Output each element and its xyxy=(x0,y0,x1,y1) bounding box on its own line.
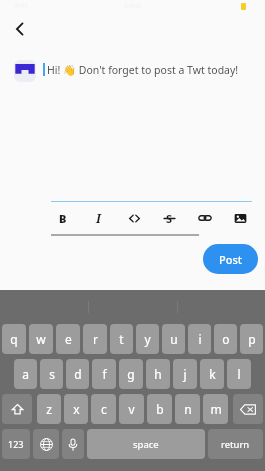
button[interactable]: i xyxy=(188,324,211,354)
staticText: u xyxy=(170,331,178,347)
button[interactable]: k xyxy=(200,359,224,389)
button[interactable]: y xyxy=(136,324,159,354)
staticText: f xyxy=(102,366,107,382)
button[interactable]: o xyxy=(214,324,237,354)
staticText: j xyxy=(183,366,187,382)
button[interactable]: Voice input xyxy=(62,429,84,459)
button[interactable]: t xyxy=(110,324,133,354)
staticText: v xyxy=(128,401,135,417)
button[interactable]: e xyxy=(56,324,80,354)
staticText: x xyxy=(73,401,80,417)
staticText: S xyxy=(166,211,173,226)
staticText: g xyxy=(127,366,135,382)
staticText: i xyxy=(198,331,202,347)
button[interactable]: p xyxy=(240,324,263,354)
button[interactable]: v xyxy=(119,394,144,424)
staticText: B xyxy=(59,211,67,226)
staticText: q xyxy=(10,331,18,347)
staticText: t xyxy=(119,331,124,347)
button[interactable]: n xyxy=(175,394,200,424)
button[interactable]: Backspace xyxy=(233,394,263,424)
staticText: c xyxy=(101,401,107,417)
staticText: return xyxy=(221,438,250,451)
staticText: I xyxy=(96,210,101,226)
button[interactable]: Avatar xyxy=(14,60,36,82)
button[interactable]: Back xyxy=(6,15,34,43)
button[interactable]: Image xyxy=(228,206,252,230)
staticText: l xyxy=(237,366,241,382)
button[interactable]: f xyxy=(92,359,116,389)
button[interactable]: d xyxy=(66,359,89,389)
staticText: a xyxy=(22,366,29,382)
button[interactable]: s xyxy=(40,359,63,389)
staticText: r xyxy=(93,331,98,347)
staticText: 123 xyxy=(8,438,24,450)
button[interactable]: u xyxy=(162,324,185,354)
staticText: e xyxy=(65,331,72,347)
button[interactable]: Emoji xyxy=(33,429,59,459)
button[interactable]: h xyxy=(146,359,170,389)
button[interactable]: space xyxy=(87,429,205,459)
button[interactable]: r xyxy=(83,324,107,354)
button[interactable]: Bold xyxy=(51,206,75,230)
staticText: w xyxy=(36,331,46,347)
staticText: p xyxy=(248,331,256,347)
button[interactable]: b xyxy=(147,394,172,424)
staticText: s xyxy=(49,366,55,382)
staticText: Post xyxy=(219,252,242,267)
staticText: b xyxy=(156,401,164,417)
staticText: h xyxy=(154,366,162,382)
staticText: m xyxy=(210,401,222,417)
button[interactable]: Shift xyxy=(2,394,32,424)
button[interactable]: Code xyxy=(122,206,146,230)
staticText: space xyxy=(133,438,159,451)
button[interactable]: a xyxy=(14,359,37,389)
button[interactable]: Strikethrough xyxy=(157,206,181,230)
staticText: d xyxy=(74,366,82,382)
staticText: Hi! 👋 Don't forget to post a Twt today! xyxy=(47,63,239,77)
button[interactable]: Link xyxy=(193,206,217,230)
button[interactable]: x xyxy=(64,394,88,424)
button[interactable]: Post xyxy=(203,244,258,274)
button[interactable]: w xyxy=(29,324,53,354)
button[interactable]: Italic xyxy=(86,206,110,230)
button[interactable]: l xyxy=(227,359,251,389)
button[interactable]: z xyxy=(37,394,61,424)
button[interactable]: m xyxy=(203,394,228,424)
button[interactable]: return xyxy=(208,429,263,459)
button[interactable]: c xyxy=(91,394,116,424)
button[interactable]: g xyxy=(119,359,143,389)
staticText: z xyxy=(46,401,52,417)
staticText: k xyxy=(209,366,216,382)
staticText: y xyxy=(144,331,151,347)
button[interactable]: q xyxy=(2,324,26,354)
button[interactable]: 123 xyxy=(2,429,30,459)
staticText: o xyxy=(222,331,230,347)
button[interactable]: j xyxy=(173,359,197,389)
staticText: n xyxy=(184,401,192,417)
